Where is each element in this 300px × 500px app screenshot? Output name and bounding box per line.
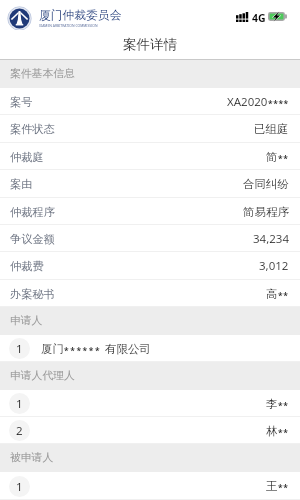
staticText: 4G — [252, 11, 266, 25]
staticText: 1 — [16, 479, 23, 495]
staticText: 仲裁庭 — [10, 150, 44, 164]
staticText: ** — [278, 482, 289, 494]
staticText: 有限公司 — [102, 341, 151, 357]
staticText: 案号 — [10, 95, 33, 109]
button[interactable]: 案件状态 — [0, 115, 300, 143]
staticText: XIAMEN ARBITRATION COMMISSION — [39, 23, 98, 28]
staticText: 已组庭 — [254, 122, 289, 136]
staticText: 王 — [266, 479, 278, 493]
staticText: **** — [268, 98, 289, 110]
staticText: 争议金额 — [10, 232, 55, 246]
staticText: 高 — [266, 287, 278, 301]
staticText: 案由 — [10, 177, 33, 191]
staticText: ** — [278, 290, 289, 302]
staticText: 案件基本信息 — [10, 67, 75, 81]
staticText: 案件状态 — [10, 122, 55, 136]
button[interactable]: 1 — [0, 390, 300, 417]
staticText: 简 — [266, 150, 278, 164]
staticText: 厦门 — [41, 342, 64, 356]
staticText: 被申请人 — [10, 451, 54, 465]
button[interactable]: 1 — [0, 472, 300, 500]
button[interactable]: 案号 — [0, 88, 300, 115]
staticText: 仲裁程序 — [10, 205, 55, 219]
button[interactable]: 仲裁程序 — [0, 198, 300, 225]
button[interactable]: 1 — [0, 335, 300, 362]
staticText: 李 — [266, 397, 278, 411]
staticText: 2 — [16, 423, 23, 439]
button[interactable]: 2 — [0, 417, 300, 444]
staticText: 办案秘书 — [10, 287, 55, 301]
staticText: ****** — [64, 345, 102, 357]
staticText: ** — [278, 400, 289, 412]
staticText: 合同纠纷 — [243, 177, 289, 191]
staticText: 仲裁费 — [10, 259, 44, 273]
staticText: 1 — [16, 396, 23, 412]
button[interactable]: 办案秘书 — [0, 280, 300, 307]
staticText: 申请人 — [10, 314, 43, 328]
staticText: 案件详情 — [123, 36, 177, 53]
staticText: 厦门仲裁委员会 — [39, 8, 122, 23]
staticText: ** — [278, 153, 289, 165]
staticText: 简易程序 — [243, 205, 289, 219]
staticText: 3,012 — [259, 258, 289, 274]
button[interactable]: 争议金额 — [0, 225, 300, 252]
staticText: 申请人代理人 — [10, 369, 75, 383]
button[interactable]: 仲裁费 — [0, 252, 300, 280]
staticText: 林 — [266, 424, 278, 438]
staticText: XA2020 — [227, 94, 268, 110]
button[interactable]: 案由 — [0, 170, 300, 198]
staticText: 34,234 — [253, 231, 289, 247]
button[interactable]: 仲裁庭 — [0, 143, 300, 170]
staticText: 1 — [16, 341, 23, 357]
staticText: ** — [278, 427, 289, 439]
